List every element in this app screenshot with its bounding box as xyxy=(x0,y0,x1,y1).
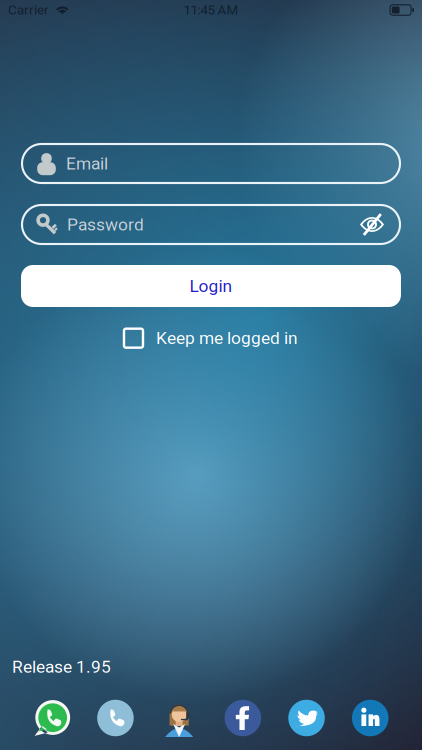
button[interactable]: LinkedIn xyxy=(351,699,389,737)
button[interactable]: Support agent xyxy=(160,699,198,737)
button[interactable]: WhatsApp xyxy=(33,699,71,737)
button[interactable]: Keep me logged in xyxy=(124,328,298,348)
button[interactable]: Show password xyxy=(353,206,391,242)
staticText: Release 1.95 xyxy=(12,657,111,677)
staticText: 11:45 AM xyxy=(183,2,238,18)
button[interactable]: Facebook xyxy=(224,699,262,737)
button[interactable]: Email xyxy=(22,144,400,183)
staticText: Keep me logged in xyxy=(156,328,298,348)
button[interactable]: Twitter xyxy=(288,699,326,737)
staticText: Login xyxy=(189,276,232,296)
button[interactable]: Login xyxy=(21,265,401,307)
staticText: Carrier xyxy=(8,2,49,18)
staticText: Email xyxy=(66,153,108,174)
staticText: Password xyxy=(67,214,144,235)
button[interactable]: Call us xyxy=(96,699,134,737)
